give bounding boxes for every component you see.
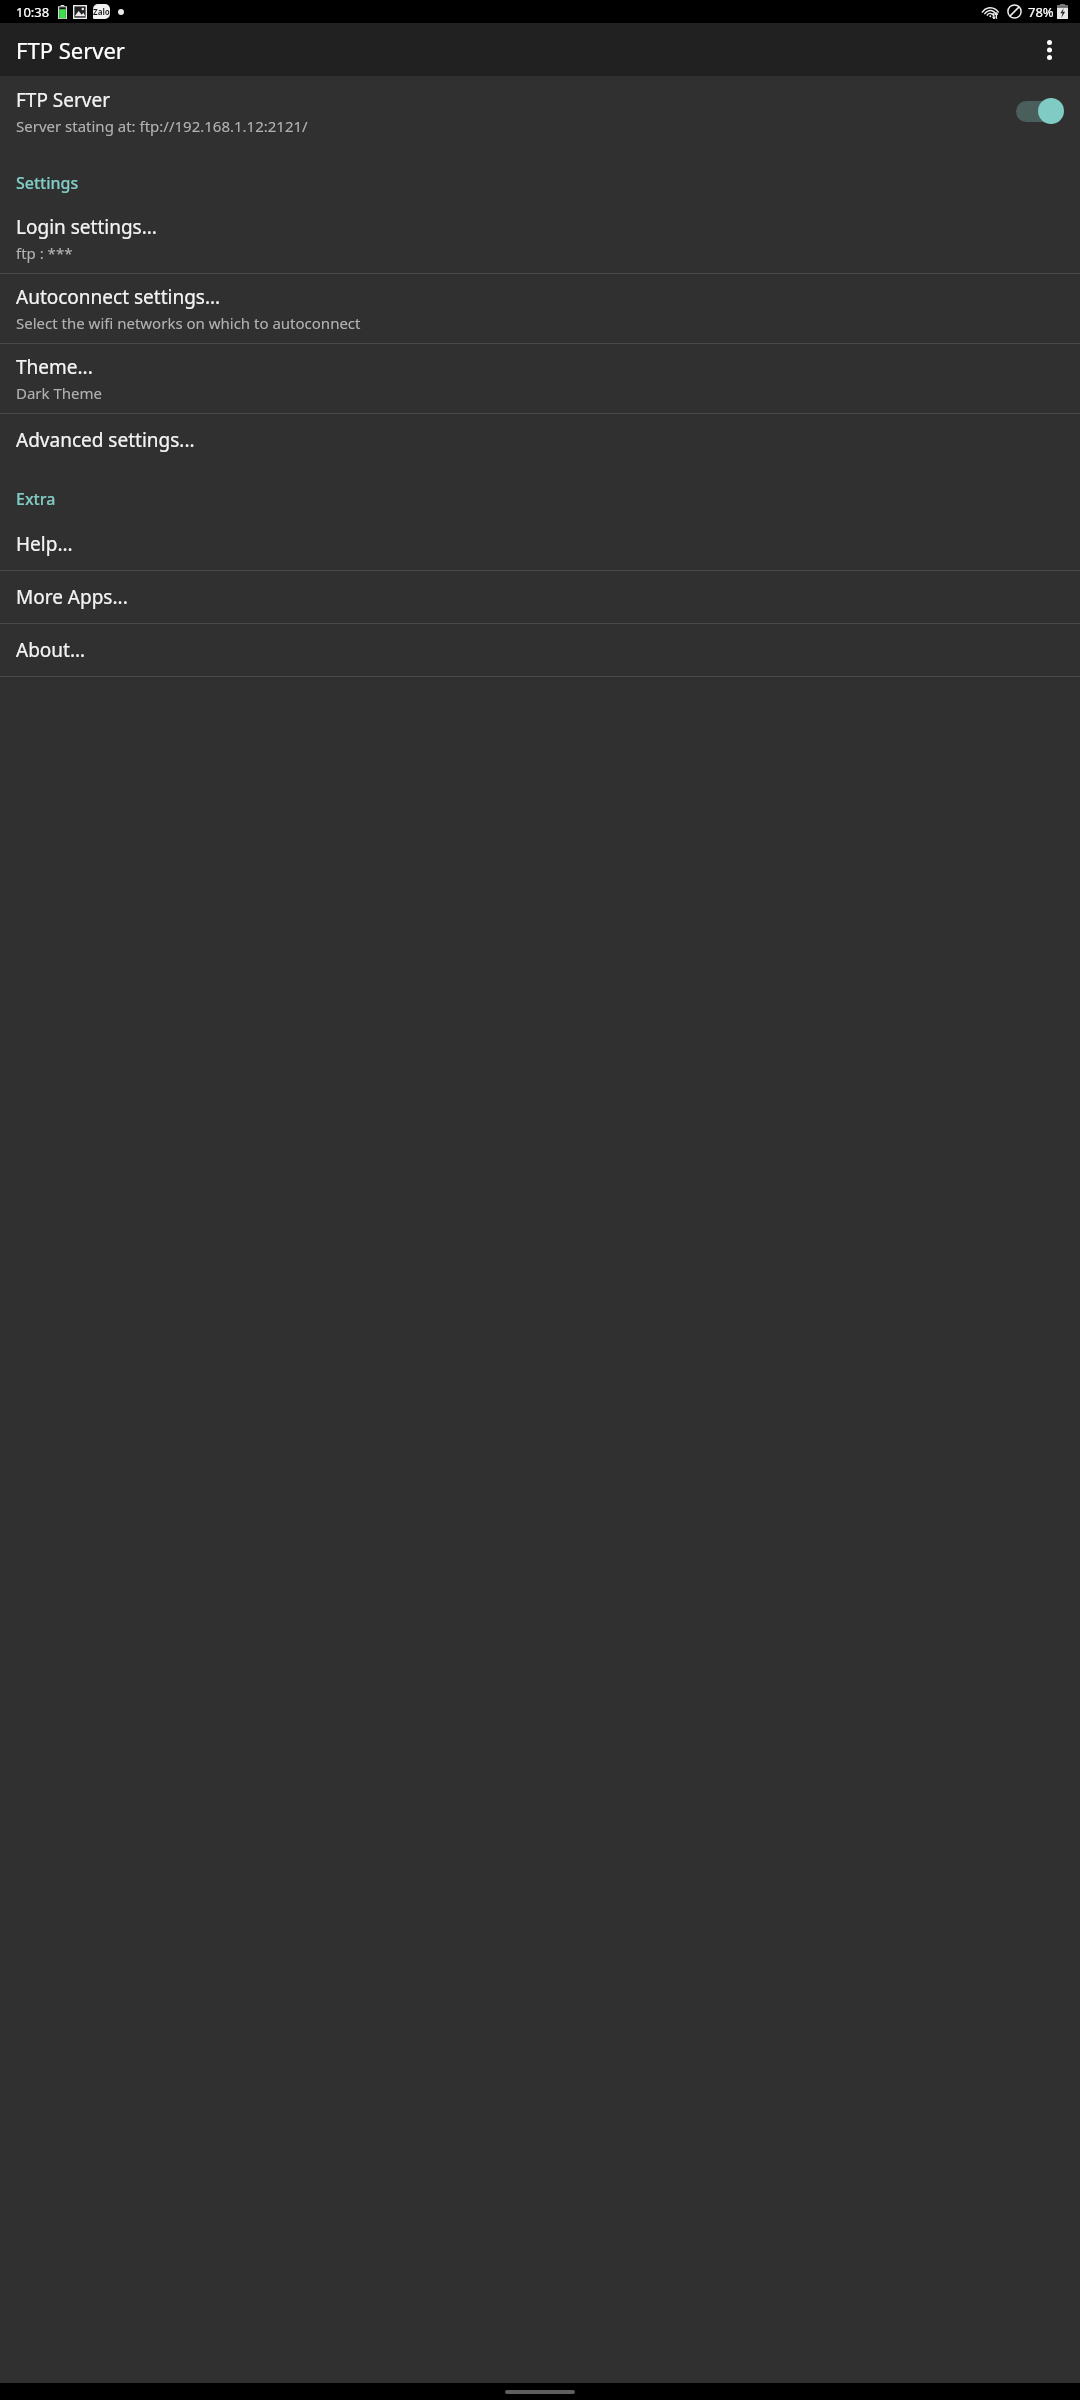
staticText: 10:38 [16, 3, 50, 21]
staticText: About... [16, 637, 86, 663]
button[interactable]: Help... [0, 518, 1080, 570]
staticText: FTP Server [16, 35, 125, 65]
button[interactable]: Toggle FTP Server [1014, 96, 1064, 126]
staticText: FTP Server [16, 87, 111, 113]
staticText: Login settings... [16, 214, 157, 240]
staticText: Advanced settings... [16, 427, 195, 453]
button[interactable]: Theme... [0, 344, 1080, 413]
staticText: Dark Theme [16, 383, 103, 403]
staticText: Theme... [16, 354, 93, 380]
staticText: Settings [16, 172, 79, 194]
button[interactable]: About... [0, 624, 1080, 676]
button[interactable]: More Apps... [0, 571, 1080, 623]
staticText: Extra [16, 488, 56, 510]
button[interactable]: Login settings... [0, 204, 1080, 273]
button[interactable]: FTP Server [0, 76, 1080, 146]
button[interactable]: More options [1027, 28, 1071, 72]
staticText: Zalo [93, 6, 110, 17]
staticText: Autoconnect settings... [16, 284, 221, 310]
staticText: ftp : *** [16, 243, 73, 263]
staticText: Help... [16, 531, 73, 557]
button[interactable]: Advanced settings... [0, 414, 1080, 466]
staticText: Select the wifi networks on which to aut… [16, 313, 361, 333]
staticText: More Apps... [16, 584, 128, 610]
staticText: 78% [1028, 3, 1054, 21]
button[interactable]: Autoconnect settings... [0, 274, 1080, 343]
staticText: Server stating at: ftp://192.168.1.12:21… [16, 116, 308, 136]
